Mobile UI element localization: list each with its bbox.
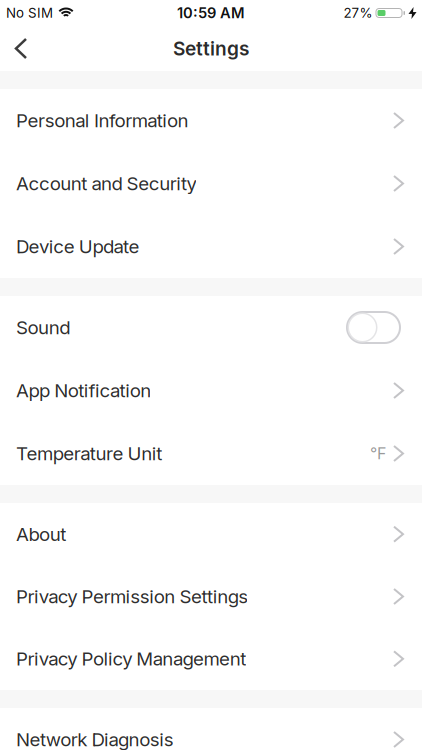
staticText: Sound: [16, 316, 70, 339]
button[interactable]: Personal Information: [0, 89, 422, 152]
staticText: Privacy Permission Settings: [16, 585, 248, 608]
button[interactable]: Back: [0, 26, 38, 70]
button[interactable]: Privacy Permission Settings: [0, 565, 422, 628]
button[interactable]: Device Update: [0, 215, 422, 278]
staticText: No SIM: [6, 5, 53, 21]
staticText: Privacy Policy Management: [16, 647, 246, 670]
button[interactable]: App Notification: [0, 359, 422, 422]
staticText: Personal Information: [16, 109, 188, 132]
button[interactable]: About: [0, 503, 422, 565]
button[interactable]: Privacy Policy Management: [0, 628, 422, 690]
staticText: 10:59 AM: [177, 4, 245, 22]
staticText: Account and Security: [16, 172, 196, 195]
staticText: Device Update: [16, 235, 140, 258]
staticText: Settings: [173, 37, 249, 60]
button[interactable]: Network Diagnosis: [0, 708, 422, 750]
staticText: Temperature Unit: [16, 442, 162, 465]
staticText: About: [16, 523, 66, 545]
staticText: 27%: [343, 5, 372, 21]
button[interactable]: Sound: [346, 311, 401, 344]
button[interactable]: Temperature Unit: [0, 422, 422, 485]
staticText: Network Diagnosis: [16, 728, 174, 750]
button[interactable]: Account and Security: [0, 152, 422, 215]
staticText: °F: [370, 444, 386, 463]
staticText: App Notification: [16, 379, 151, 402]
